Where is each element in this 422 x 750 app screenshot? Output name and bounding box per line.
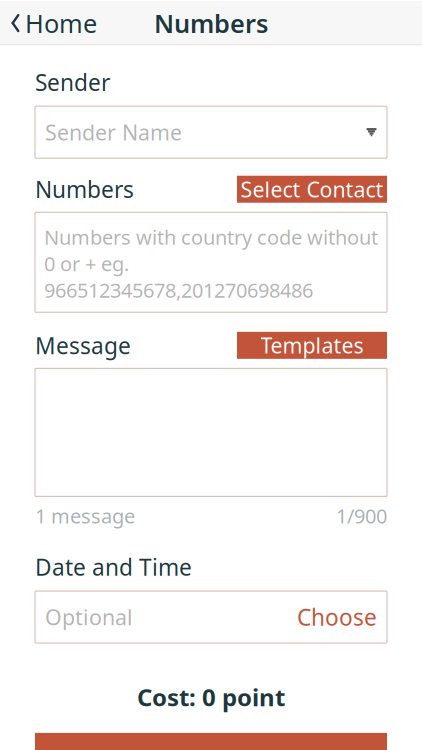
staticText: Numbers — [154, 6, 268, 40]
staticText: Numbers — [35, 174, 134, 204]
button[interactable]: Templates — [237, 332, 387, 359]
button[interactable]: Home — [0, 1, 107, 45]
staticText: Optional — [45, 603, 133, 631]
staticText: Numbers with country code without 0 or +… — [44, 224, 378, 303]
staticText: Cost: 0 point — [137, 681, 285, 713]
staticText: Select Contact — [240, 175, 383, 203]
staticText: Home — [25, 6, 97, 40]
staticText: Message — [35, 330, 131, 360]
staticText: 1/900 — [336, 502, 387, 529]
staticText: Date and Time — [35, 552, 192, 582]
staticText: 1 message — [35, 502, 135, 529]
staticText: Templates — [260, 331, 363, 359]
staticText: Sender Name — [45, 118, 182, 146]
button[interactable]: Select Contact — [237, 176, 387, 203]
staticText: Choose — [297, 602, 377, 632]
staticText: Sender — [35, 67, 110, 97]
button[interactable]: Optional — [35, 591, 387, 643]
